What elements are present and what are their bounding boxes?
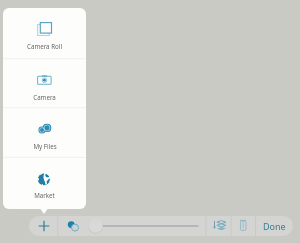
- button[interactable]: [83, 216, 206, 236]
- button[interactable]: Camera: [3, 59, 86, 109]
- staticText: Camera Roll: [27, 42, 62, 50]
- button[interactable]: Blend mode: [60, 216, 85, 236]
- staticText: Camera: [33, 93, 56, 101]
- staticText: Done: [263, 220, 286, 232]
- button[interactable]: Layers: [208, 216, 233, 236]
- button[interactable]: My Files: [3, 108, 86, 158]
- button[interactable]: Done: [256, 216, 293, 236]
- button[interactable]: Delete: [230, 216, 255, 236]
- staticText: Market: [34, 191, 55, 199]
- button[interactable]: Add: [29, 216, 58, 236]
- button[interactable]: Market: [3, 157, 86, 207]
- staticText: My Files: [33, 142, 57, 150]
- button[interactable]: Camera Roll: [3, 8, 86, 58]
